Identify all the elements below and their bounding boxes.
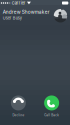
staticText: Andrew Showmaker bbox=[3, 9, 50, 15]
staticText: Decline bbox=[12, 113, 24, 117]
staticText: Call Back bbox=[44, 113, 59, 117]
button[interactable]: Decline bbox=[2, 95, 35, 117]
staticText: User Busy bbox=[3, 16, 22, 20]
button[interactable]: Call Back bbox=[35, 95, 68, 117]
staticText: Carrier bbox=[12, 1, 26, 5]
